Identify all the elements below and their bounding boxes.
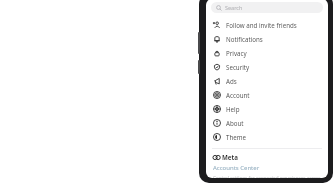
button[interactable]: Theme — [206, 130, 328, 144]
button[interactable]: Notifications — [206, 32, 328, 46]
button[interactable]: Follow and invite friends — [206, 18, 328, 32]
staticText: Follow and invite friends — [226, 21, 297, 29]
button[interactable]: Privacy — [206, 46, 328, 60]
staticText: Meta — [222, 153, 238, 161]
button[interactable]: Ads — [206, 74, 328, 88]
staticText: Security — [226, 63, 250, 71]
button[interactable]: About — [206, 116, 328, 130]
staticText: Control settings for connected experienc… — [213, 175, 321, 178]
button[interactable]: Search — [211, 2, 323, 13]
staticText: Account — [226, 91, 250, 99]
button[interactable]: Accounts Center — [213, 164, 260, 172]
staticText: Help — [226, 105, 240, 113]
staticText: Theme — [226, 133, 247, 141]
staticText: Accounts Center — [213, 164, 260, 172]
button[interactable]: Account — [206, 88, 328, 102]
staticText: Notifications — [226, 35, 263, 43]
staticText: Ads — [226, 77, 237, 85]
staticText: Search — [225, 4, 243, 11]
button[interactable]: Help — [206, 102, 328, 116]
button[interactable]: Security — [206, 60, 328, 74]
staticText: Privacy — [226, 49, 247, 57]
staticText: About — [226, 119, 244, 127]
